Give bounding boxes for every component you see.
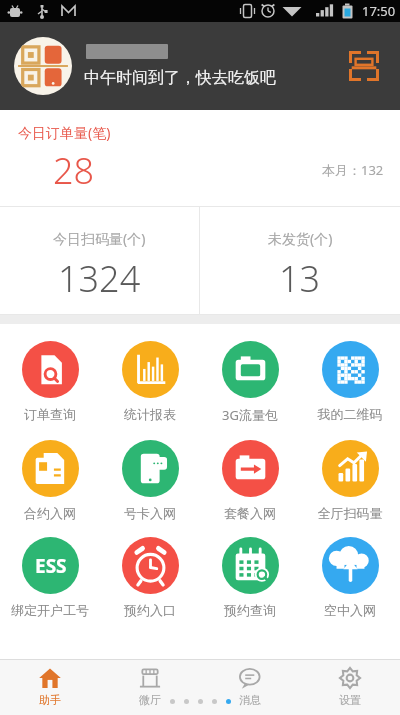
button[interactable]: 号卡入网: [100, 438, 200, 523]
button[interactable]: 预约入口: [100, 535, 200, 620]
staticText: 预约查询: [200, 602, 300, 618]
button[interactable]: ESS: [0, 535, 100, 620]
staticText: 助手: [0, 693, 100, 707]
button[interactable]: Scan QR code: [342, 44, 386, 88]
button[interactable]: 今日扫码量(个): [0, 207, 199, 314]
button[interactable]: 全厅扫码量: [300, 438, 400, 523]
staticText: 1324: [58, 254, 141, 303]
button[interactable]: 消息: [200, 659, 300, 715]
staticText: 套餐入网: [200, 505, 300, 521]
button[interactable]: 套餐入网: [200, 438, 300, 523]
button[interactable]: 预约查询: [200, 535, 300, 620]
staticText: 未发货(个): [268, 229, 333, 248]
button[interactable]: 统计报表: [100, 339, 200, 424]
button[interactable]: 未发货(个): [200, 207, 400, 314]
staticText: 设置: [300, 693, 400, 707]
staticText: 合约入网: [0, 505, 100, 521]
staticText: 13: [279, 254, 321, 303]
button[interactable]: 空中入网: [300, 535, 400, 620]
staticText: 绑定开户工号: [0, 602, 100, 618]
staticText: 预约入口: [100, 602, 200, 618]
staticText: 订单查询: [0, 406, 100, 422]
staticText: ESS: [35, 553, 67, 579]
staticText: 全厅扫码量: [300, 505, 400, 521]
staticText: 空中入网: [300, 602, 400, 618]
staticText: 今日扫码量(个): [53, 229, 146, 248]
button[interactable]: 助手: [0, 659, 100, 715]
staticText: 号卡入网: [100, 505, 200, 521]
staticText: 我的二维码: [300, 406, 400, 422]
staticText: 本月：132: [322, 161, 384, 179]
button[interactable]: 合约入网: [0, 438, 100, 523]
button[interactable]: 订单查询: [0, 339, 100, 424]
staticText: 统计报表: [100, 406, 200, 422]
button[interactable]: 设置: [300, 659, 400, 715]
staticText: 17:50: [362, 2, 396, 20]
button[interactable]: 3G流量包: [200, 339, 300, 426]
button[interactable]: 今日订单量(笔): [0, 110, 400, 206]
button[interactable]: 我的二维码: [300, 339, 400, 424]
staticText: 28: [53, 146, 95, 195]
button[interactable]: 微厅: [100, 659, 200, 715]
staticText: 中午时间到了，快去吃饭吧: [84, 68, 276, 88]
button[interactable]: Profile avatar: [14, 37, 72, 95]
staticText: 消息: [200, 693, 300, 707]
staticText: 3G流量包: [200, 406, 300, 424]
staticText: 今日订单量(笔): [18, 123, 111, 142]
staticText: 微厅: [100, 693, 200, 707]
